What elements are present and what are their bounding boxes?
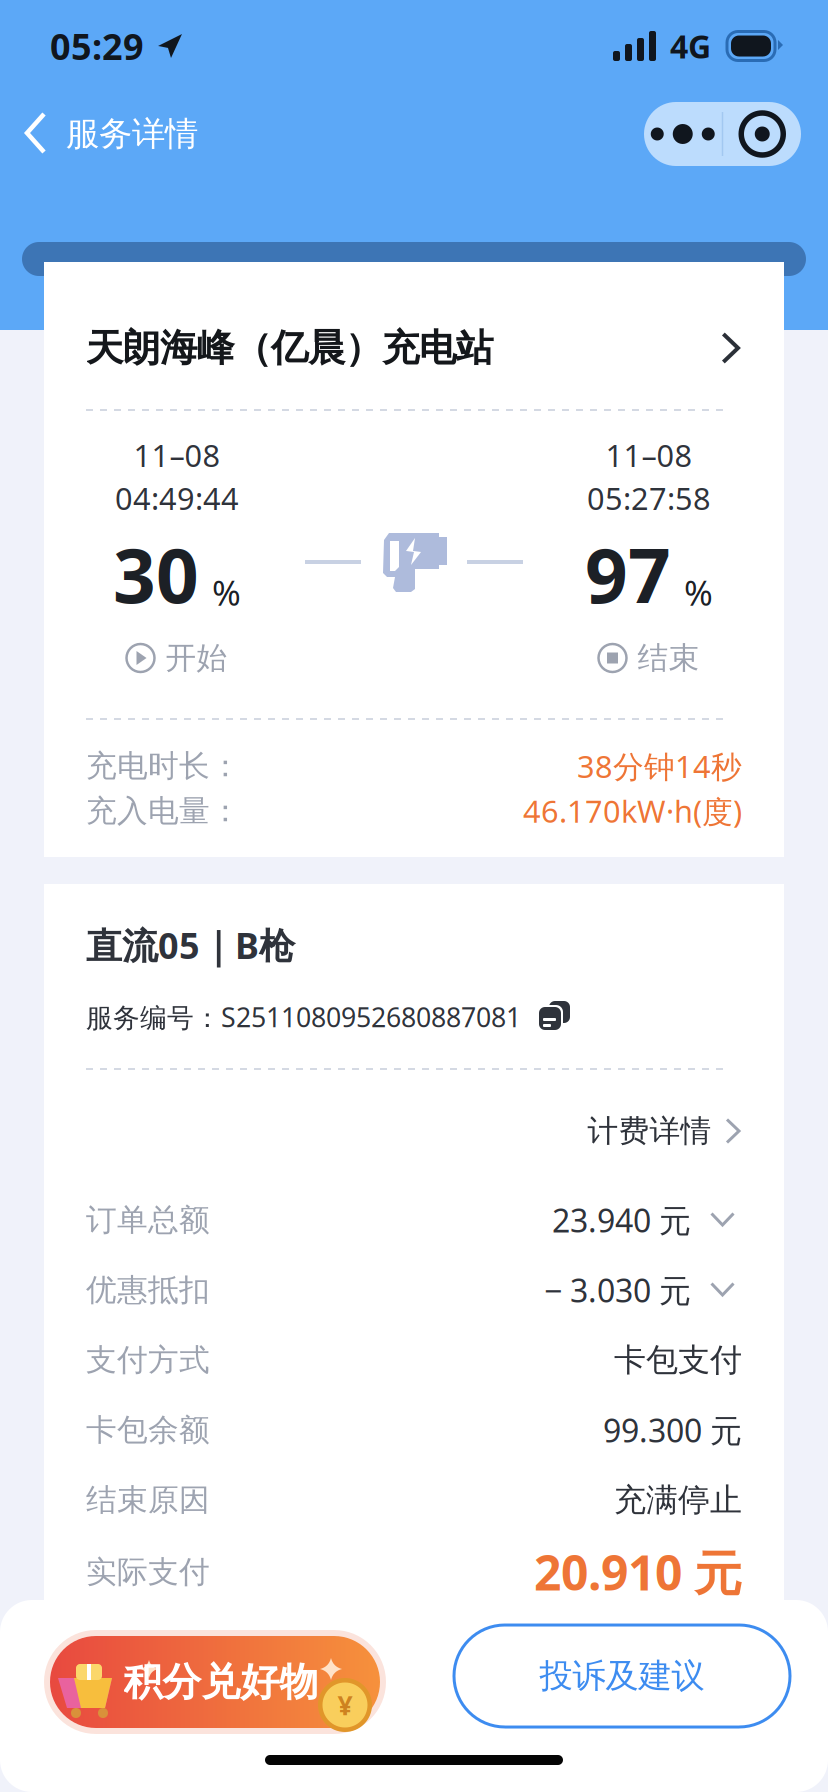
staticText: 支付方式	[86, 1341, 210, 1379]
staticText: 服务详情	[66, 113, 198, 155]
button[interactable]: Copy service number	[539, 1001, 571, 1033]
staticText: 计费详情	[587, 1112, 711, 1150]
staticText: 直流05｜B枪	[86, 920, 295, 969]
button[interactable]: Close	[723, 102, 801, 166]
staticText: 结束	[637, 639, 699, 677]
button[interactable]: 投诉及建议	[454, 1625, 790, 1727]
staticText: 实际支付	[86, 1553, 210, 1591]
button[interactable]: 积分兑好物	[44, 1630, 386, 1734]
button[interactable]: 天朗海峰（亿晨）充电站	[44, 320, 784, 376]
staticText: %	[212, 569, 241, 616]
staticText: 05:29	[50, 21, 144, 70]
staticText: − 3.030 元	[544, 1268, 691, 1312]
staticText: 优惠抵扣	[86, 1271, 210, 1309]
staticText: 充入电量：	[86, 792, 241, 830]
staticText: 11–08	[133, 434, 220, 476]
staticText: 积分兑好物	[123, 1658, 318, 1706]
staticText: 卡包余额	[86, 1411, 210, 1449]
staticText: 46.170kW·h(度)	[523, 790, 742, 832]
staticText: 服务编号：S2511080952680887081	[86, 999, 521, 1035]
staticText: 结束原因	[86, 1481, 210, 1519]
staticText: 20.910 元	[534, 1539, 742, 1605]
staticText: 23.940 元	[552, 1198, 691, 1242]
staticText: 充满停止	[614, 1480, 742, 1520]
staticText: 订单总额	[86, 1201, 210, 1239]
staticText: 11–08	[605, 434, 692, 476]
staticText: %	[684, 569, 713, 616]
staticText: 4G	[670, 24, 711, 68]
staticText: 30	[113, 523, 199, 625]
button[interactable]: More	[644, 102, 722, 166]
button[interactable]: 服务详情	[0, 94, 218, 174]
staticText: 05:27:58	[587, 477, 711, 519]
staticText: 38分钟14秒	[577, 745, 742, 787]
staticText: 充电时长：	[86, 747, 241, 785]
staticText: ¥	[337, 1687, 352, 1723]
staticText: 99.300 元	[603, 1408, 742, 1452]
button[interactable]: 计费详情	[587, 1103, 742, 1159]
staticText: 97	[585, 523, 671, 625]
staticText: 投诉及建议	[539, 1655, 704, 1697]
staticText: 04:49:44	[115, 477, 239, 519]
staticText: 开始	[165, 639, 227, 677]
staticText: 卡包支付	[614, 1340, 742, 1380]
staticText: 天朗海峰（亿晨）充电站	[86, 324, 493, 371]
